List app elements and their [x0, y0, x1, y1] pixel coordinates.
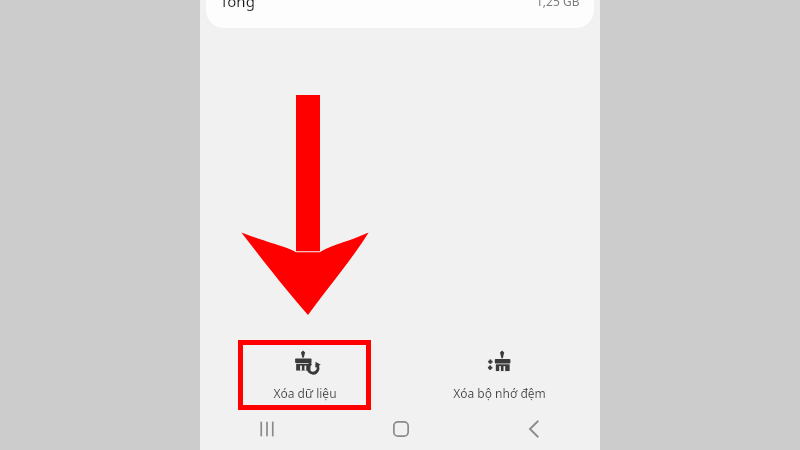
- staticText: 1,25 GB: [536, 0, 580, 9]
- button[interactable]: Xóa bộ nhớ đệm: [433, 340, 566, 410]
- button[interactable]: Xóa dữ liệu: [238, 340, 371, 410]
- staticText: Xóa bộ nhớ đệm: [453, 385, 546, 401]
- button[interactable]: Recent apps: [200, 408, 334, 450]
- button[interactable]: Home: [334, 408, 467, 450]
- button[interactable]: Tổng: [206, 0, 594, 28]
- staticText: Tổng: [220, 0, 255, 11]
- button[interactable]: Back: [467, 408, 600, 450]
- staticText: Xóa dữ liệu: [273, 385, 337, 401]
